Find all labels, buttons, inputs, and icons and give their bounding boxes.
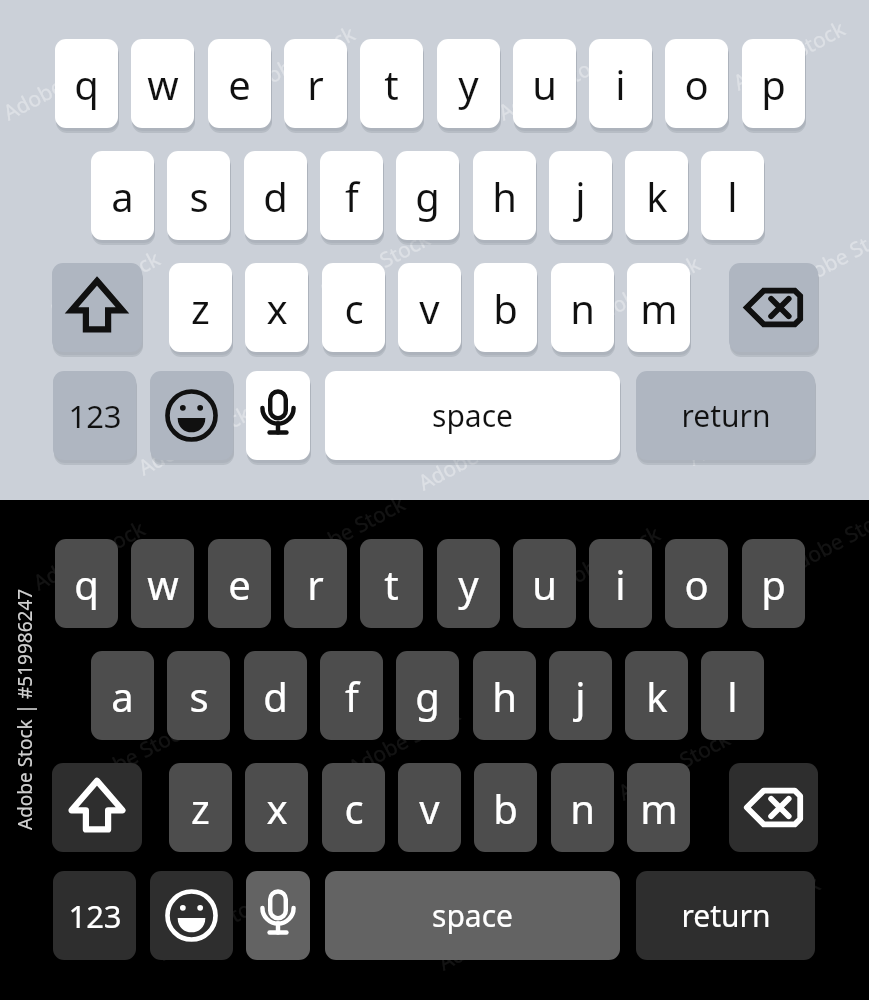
staticText: v	[419, 781, 440, 835]
button[interactable]: space	[325, 871, 620, 960]
button[interactable]: return	[636, 871, 815, 960]
button[interactable]: b	[474, 763, 537, 852]
button[interactable]: Shift	[52, 263, 142, 352]
button[interactable]: y	[437, 39, 500, 128]
staticText: i	[615, 557, 626, 611]
button[interactable]: p	[742, 39, 805, 128]
button[interactable]: w	[131, 539, 194, 628]
button[interactable]: h	[473, 151, 536, 240]
staticText: n	[570, 781, 595, 835]
button[interactable]: q	[55, 539, 118, 628]
staticText: Adobe Stock	[133, 399, 255, 482]
button[interactable]: v	[398, 763, 461, 852]
button[interactable]: d	[244, 651, 307, 740]
button[interactable]: e	[208, 539, 271, 628]
staticText: x	[266, 781, 288, 835]
button[interactable]: l	[701, 151, 764, 240]
staticText: l	[727, 669, 738, 723]
button[interactable]: n	[551, 763, 614, 852]
button[interactable]: c	[322, 763, 385, 852]
staticText: i	[615, 57, 626, 111]
staticText: q	[74, 57, 99, 111]
button[interactable]: p	[742, 539, 805, 628]
button[interactable]: j	[549, 651, 612, 740]
button[interactable]: o	[665, 539, 728, 628]
button[interactable]: f	[320, 651, 383, 740]
button[interactable]: k	[625, 651, 688, 740]
button[interactable]: t	[360, 539, 423, 628]
staticText: return	[681, 395, 771, 436]
button[interactable]: Backspace	[729, 763, 818, 852]
button[interactable]: Voice input	[246, 371, 310, 460]
button[interactable]: h	[473, 651, 536, 740]
staticText: n	[570, 281, 595, 335]
button[interactable]: c	[322, 263, 385, 352]
button[interactable]: n	[551, 263, 614, 352]
staticText: Adobe Stock	[73, 714, 195, 797]
button[interactable]: m	[627, 763, 690, 852]
button[interactable]: r	[284, 539, 347, 628]
staticText: v	[419, 281, 440, 335]
button[interactable]: w	[131, 39, 194, 128]
staticText: j	[575, 669, 586, 723]
staticText: Adobe Stock	[583, 249, 705, 332]
staticText: p	[761, 557, 786, 611]
button[interactable]: r	[284, 39, 347, 128]
button[interactable]: 123	[53, 871, 136, 960]
button[interactable]: u	[513, 539, 576, 628]
button[interactable]: b	[474, 263, 537, 352]
staticText: Adobe Stock	[728, 14, 850, 97]
button[interactable]: k	[625, 151, 688, 240]
staticText: h	[492, 169, 517, 223]
button[interactable]: s	[167, 651, 230, 740]
button[interactable]: j	[549, 151, 612, 240]
button[interactable]: z	[169, 263, 232, 352]
button[interactable]: Emoji	[150, 371, 233, 460]
staticText: h	[492, 669, 517, 723]
button[interactable]: v	[398, 263, 461, 352]
button[interactable]: i	[589, 39, 652, 128]
staticText: o	[684, 557, 709, 611]
staticText: 123	[68, 895, 122, 937]
button[interactable]: d	[244, 151, 307, 240]
button[interactable]: Voice input	[246, 871, 310, 960]
staticText: u	[532, 57, 557, 111]
staticText: d	[263, 669, 288, 723]
button[interactable]: q	[55, 39, 118, 128]
staticText: z	[191, 781, 210, 835]
button[interactable]: m	[627, 263, 690, 352]
staticText: y	[458, 557, 479, 611]
button[interactable]: g	[396, 651, 459, 740]
button[interactable]: o	[665, 39, 728, 128]
button[interactable]: Shift	[52, 763, 142, 852]
button[interactable]: a	[91, 151, 154, 240]
button[interactable]: f	[320, 151, 383, 240]
button[interactable]: x	[245, 263, 308, 352]
staticText: q	[74, 557, 99, 611]
button[interactable]: z	[169, 763, 232, 852]
staticText: s	[189, 669, 209, 723]
staticText: a	[111, 169, 134, 223]
button[interactable]: e	[208, 39, 271, 128]
button[interactable]: return	[636, 371, 815, 460]
button[interactable]: g	[396, 151, 459, 240]
button[interactable]: space	[325, 371, 620, 460]
staticText: Adobe Stock	[413, 414, 535, 497]
button[interactable]: u	[513, 39, 576, 128]
button[interactable]: x	[245, 763, 308, 852]
staticText: b	[493, 781, 518, 835]
button[interactable]: s	[167, 151, 230, 240]
button[interactable]: a	[91, 651, 154, 740]
button[interactable]: 123	[53, 371, 136, 460]
button[interactable]: Backspace	[729, 263, 818, 352]
button[interactable]: i	[589, 539, 652, 628]
button[interactable]: y	[437, 539, 500, 628]
staticText: a	[111, 669, 134, 723]
staticText: p	[761, 57, 786, 111]
staticText: space	[432, 395, 513, 436]
staticText: m	[640, 281, 678, 335]
staticText: j	[575, 169, 586, 223]
button[interactable]: Emoji	[150, 871, 233, 960]
button[interactable]: t	[360, 39, 423, 128]
button[interactable]: l	[701, 651, 764, 740]
